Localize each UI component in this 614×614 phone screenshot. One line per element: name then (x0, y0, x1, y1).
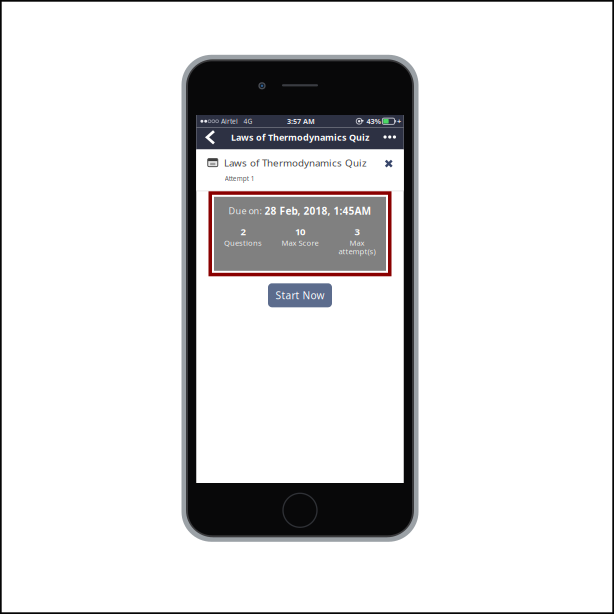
staticText: 3 (354, 225, 359, 238)
button[interactable]: More options (376, 127, 404, 149)
staticText: 43% (366, 116, 380, 126)
staticText: 2 (240, 225, 245, 238)
staticText: + (397, 116, 401, 126)
staticText: Max (349, 238, 364, 248)
staticText: Airtel (221, 117, 238, 126)
staticText: Max Score (281, 238, 318, 248)
staticText: Attempt 1 (225, 174, 255, 183)
button[interactable]: Start Now (268, 283, 332, 307)
staticText: 28 Feb, 2018, 1:45AM (264, 204, 371, 218)
staticText: Due on: (228, 204, 261, 217)
staticText: Questions (224, 238, 262, 248)
staticText: Start Now (275, 288, 324, 302)
staticText: Laws of Thermodynamics Quiz (231, 131, 369, 143)
staticText: 4G (243, 117, 252, 126)
staticText: attempt(s) (338, 246, 375, 257)
staticText: Laws of Thermodynamics Quiz (224, 156, 367, 169)
button[interactable]: Close (380, 156, 398, 170)
staticText: 3:57 AM (287, 116, 315, 126)
button[interactable]: Back (196, 127, 224, 149)
staticText: 10 (295, 225, 305, 238)
